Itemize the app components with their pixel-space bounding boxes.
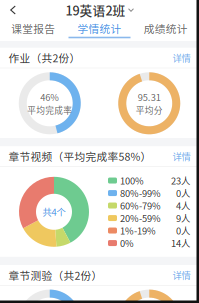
staticText: 60%-79% [120, 199, 161, 212]
staticText: 详情 [172, 268, 190, 282]
button[interactable]: 课堂报告 [0, 20, 66, 41]
staticText: 1%-19% [120, 224, 156, 237]
staticText: 作业（共2份） [8, 50, 80, 65]
staticText: 95.31 [138, 90, 161, 104]
staticText: 详情 [172, 149, 190, 163]
staticText: 章节测验（共2份） [8, 267, 102, 283]
staticText: 课堂报告 [11, 20, 55, 36]
staticText: 章节视频（平均完成率58%） [8, 148, 151, 164]
staticText: 9人 [176, 211, 190, 225]
staticText: 46% [40, 90, 59, 104]
staticText: 19英语2班 [65, 1, 125, 19]
staticText: 0人 [176, 224, 190, 237]
staticText: 4人 [176, 199, 190, 212]
staticText: 100% [120, 174, 144, 187]
button[interactable]: 详情 [172, 149, 190, 163]
button[interactable]: Back [0, 0, 26, 20]
staticText: 学情统计 [77, 20, 121, 36]
staticText: 共4个 [42, 205, 65, 218]
staticText: 20%-59% [120, 211, 161, 225]
button[interactable]: 详情 [172, 268, 190, 282]
staticText: 详情 [172, 51, 190, 64]
button[interactable]: 成绩统计 [133, 20, 199, 41]
button[interactable]: 详情 [172, 51, 190, 64]
button[interactable]: 19英语2班 [65, 0, 133, 20]
staticText: 14人 [171, 236, 190, 250]
staticText: 平均分 [136, 104, 163, 116]
staticText: 0% [120, 236, 134, 250]
staticText: 23人 [171, 174, 190, 187]
button[interactable]: 学情统计 [66, 20, 133, 41]
staticText: 0人 [176, 186, 190, 200]
staticText: 成绩统计 [144, 20, 188, 36]
staticText: 平均完成率 [27, 104, 72, 116]
staticText: 80%-99% [120, 186, 161, 200]
